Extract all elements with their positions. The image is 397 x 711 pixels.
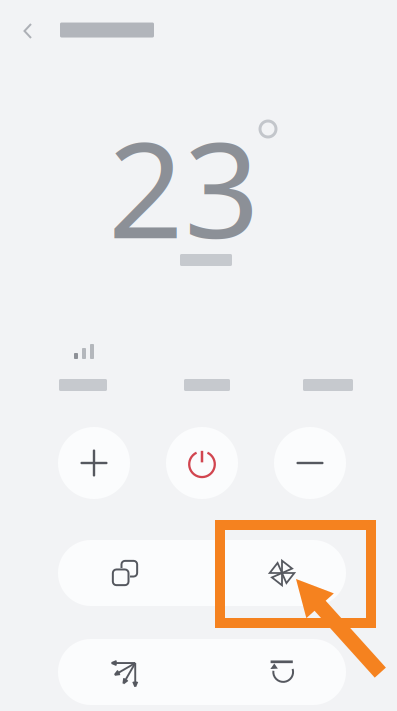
button[interactable]: Back <box>13 15 43 47</box>
staticText: 23 <box>108 99 260 275</box>
button[interactable]: Power <box>166 427 238 499</box>
button[interactable]: Increase temperature <box>58 427 130 499</box>
button[interactable]: Mode <box>58 540 202 606</box>
button[interactable]: Decrease temperature <box>274 427 346 499</box>
button[interactable]: Fan speed <box>202 540 346 606</box>
button[interactable]: Timer <box>202 639 346 705</box>
button[interactable]: Swing <box>58 639 202 705</box>
